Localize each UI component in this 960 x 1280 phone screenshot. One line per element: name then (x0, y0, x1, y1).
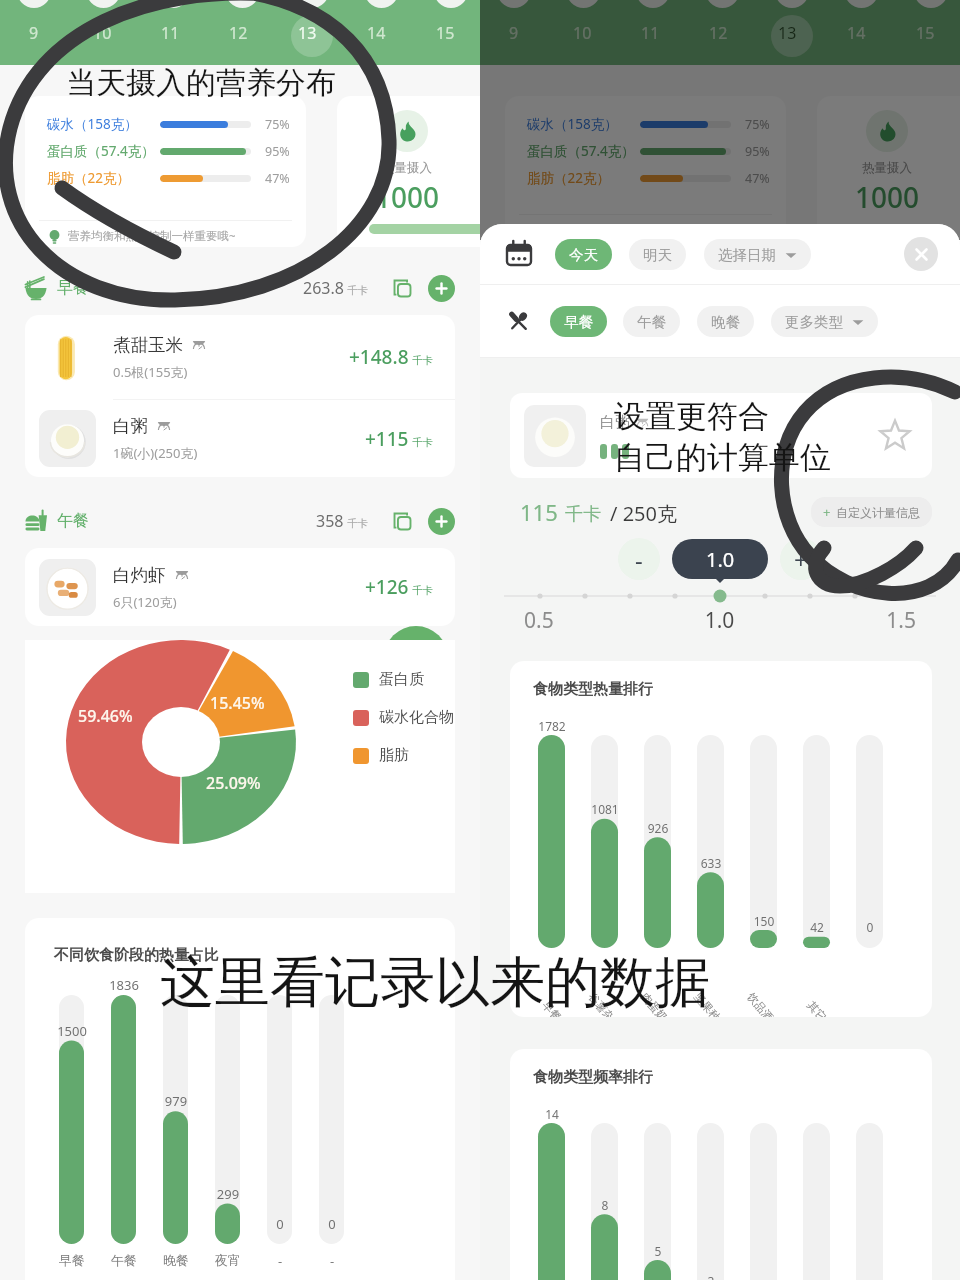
staticText: - (635, 543, 643, 576)
button[interactable]: 添加食物 (428, 275, 455, 302)
button[interactable]: 10 (68, 0, 136, 65)
staticText: 蛋白质 (379, 670, 424, 689)
button[interactable]: 明天 (629, 239, 686, 270)
button[interactable]: 热量摄入 (337, 96, 617, 247)
staticText: 15 (916, 22, 935, 44)
button[interactable]: 早餐 (550, 306, 607, 337)
staticText: 饮品酒水 (743, 988, 785, 1017)
staticText: +115 (365, 426, 409, 452)
staticText: 白粥 (113, 415, 148, 437)
button[interactable]: 早餐 (25, 261, 455, 315)
staticText: 坚果种子 (690, 988, 732, 1017)
staticText: 脂肪（22克） (47, 169, 160, 187)
staticText: 脂肪（22克） (527, 169, 640, 187)
staticText: 晚餐 (150, 1252, 202, 1268)
staticText: 不同饮食阶段的热量占比 (54, 946, 219, 965)
button[interactable]: 更多类型 (771, 306, 878, 337)
staticText: 0.5 (524, 606, 654, 635)
staticText: 633 (687, 855, 735, 871)
button[interactable]: 白粥 (510, 393, 932, 478)
button[interactable]: 今天 (555, 239, 612, 270)
button[interactable]: 添加食物 (428, 508, 455, 535)
button[interactable]: 11 (136, 0, 204, 65)
staticText: +148.8 (349, 344, 409, 370)
staticText: 自己的计算单位 (614, 438, 831, 477)
staticText: 5 (634, 1243, 682, 1259)
button[interactable]: 选择日期 (704, 239, 811, 270)
button[interactable]: 午餐 (623, 306, 680, 337)
staticText: 979 (152, 1092, 200, 1110)
button[interactable]: 白粥 (39, 400, 433, 477)
staticText: 12 (709, 22, 728, 44)
staticText: 1000 (375, 178, 440, 216)
button[interactable]: 午餐 (25, 494, 455, 548)
staticText: 1.0 (706, 546, 735, 573)
staticText: 碳水（158克） (527, 115, 640, 133)
staticText: 热量摄入 (862, 160, 912, 176)
staticText: 设置更符合 (614, 397, 769, 436)
staticText: 1782 (528, 718, 576, 734)
staticText: 13 (778, 22, 797, 44)
staticText: 0 (846, 919, 894, 935)
staticText: 15.45% (210, 692, 265, 714)
staticText: 晚餐 (711, 313, 740, 331)
staticText: 10 (93, 22, 112, 44)
staticText: 9 (29, 22, 39, 44)
button[interactable]: 晚餐 (697, 306, 754, 337)
button[interactable]: 白灼虾 (39, 548, 433, 626)
staticText: 肉蛋奶豆 (637, 988, 679, 1017)
staticText: 3 (687, 1273, 735, 1280)
button[interactable]: 12 (204, 0, 273, 65)
staticText: 千卡 (412, 436, 433, 449)
button[interactable]: + (811, 497, 932, 527)
button[interactable]: 记录饮食 (384, 626, 448, 690)
button[interactable]: 碳水（158克） (25, 96, 306, 247)
button[interactable]: 15 (411, 0, 480, 65)
staticText: 营养均衡和热量控制一样重要哦~ (68, 228, 236, 244)
staticText: 午餐 (98, 1252, 150, 1268)
staticText: 蛋白质（57.4克） (47, 142, 160, 160)
staticText: + (823, 503, 831, 521)
staticText: 14 (528, 1106, 576, 1122)
staticText: 25.09% (206, 772, 261, 794)
staticText: 499 (523, 178, 572, 216)
button[interactable]: 复制 (388, 507, 416, 535)
staticText: 食物类型热量排行 (533, 680, 653, 699)
staticText: 午餐 (637, 313, 666, 331)
staticText: 千卡 (412, 354, 433, 367)
button[interactable]: 14 (342, 0, 411, 65)
button[interactable]: 9 (0, 0, 68, 65)
staticText: 358 (316, 510, 344, 532)
staticText: 59.46% (78, 705, 133, 727)
button[interactable]: 煮甜玉米 (39, 315, 433, 399)
staticText: 1836 (100, 976, 148, 994)
staticText: 13 (298, 22, 317, 44)
button[interactable]: 关闭 (904, 237, 938, 271)
button[interactable]: 收藏 (872, 413, 918, 459)
staticText: 这里看记录以来的数据 (160, 948, 710, 1017)
staticText: 299 (204, 1185, 252, 1203)
staticText: 263.8 (303, 277, 344, 299)
staticText: 10 (573, 22, 592, 44)
staticText: 6只(120克) (113, 593, 177, 611)
button[interactable]: 增加 (780, 538, 822, 580)
staticText: 白粥 (600, 413, 630, 432)
button[interactable]: 复制 (388, 274, 416, 302)
staticText: 150 (740, 913, 788, 929)
staticText: 午餐 (57, 511, 89, 531)
staticText: 食物类型频率排行 (533, 1068, 653, 1087)
staticText: 11 (161, 22, 180, 44)
staticText: 9 (509, 22, 519, 44)
staticText: 14 (367, 22, 386, 44)
staticText: 8 (581, 1197, 629, 1213)
staticText: 热量摄入 (382, 160, 432, 176)
staticText: 千卡 (347, 284, 368, 297)
staticText: 0 (308, 1215, 356, 1233)
staticText: 1.0 (654, 606, 785, 635)
button[interactable]: 减少 (618, 538, 660, 580)
staticText: 42 (793, 919, 841, 935)
button[interactable]: 13 (273, 0, 342, 65)
staticText: 47% (265, 170, 300, 187)
button[interactable]: 1.0 (672, 539, 768, 579)
staticText: 95% (265, 143, 300, 160)
